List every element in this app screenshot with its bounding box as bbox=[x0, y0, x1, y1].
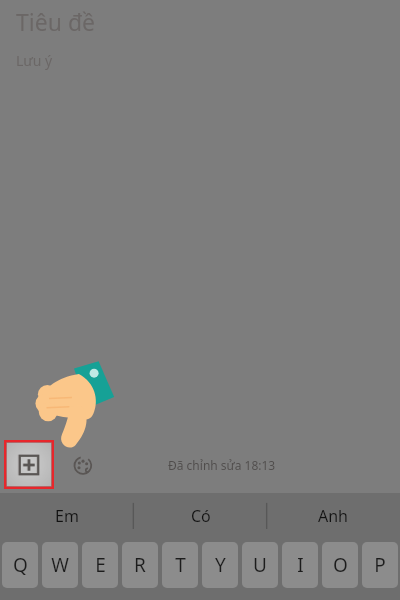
button[interactable]: W bbox=[42, 542, 78, 588]
staticText: P bbox=[374, 552, 386, 578]
button[interactable]: Có bbox=[134, 493, 267, 538]
staticText: Q bbox=[13, 552, 28, 578]
staticText: W bbox=[51, 552, 69, 578]
staticText: Em bbox=[55, 505, 79, 527]
staticText: Lưu ý bbox=[16, 51, 53, 70]
staticText: E bbox=[95, 552, 106, 578]
button[interactable]: R bbox=[122, 542, 158, 588]
button[interactable]: Tiêu đề bbox=[0, 4, 400, 38]
staticText: O bbox=[333, 552, 348, 578]
staticText: U bbox=[253, 552, 267, 578]
staticText: Anh bbox=[318, 505, 349, 527]
staticText: Đã chỉnh sửa 18:13 bbox=[168, 457, 276, 473]
button[interactable]: Anh bbox=[267, 493, 400, 538]
button[interactable]: U bbox=[242, 542, 278, 588]
staticText: Y bbox=[215, 552, 226, 578]
button[interactable]: O bbox=[322, 542, 358, 588]
button[interactable]: I bbox=[282, 542, 318, 588]
staticText: T bbox=[175, 552, 186, 578]
staticText: R bbox=[134, 552, 146, 578]
button[interactable]: Em bbox=[0, 493, 134, 538]
button[interactable]: Color palette bbox=[66, 448, 100, 482]
button[interactable]: E bbox=[82, 542, 118, 588]
staticText: I bbox=[297, 552, 304, 578]
staticText: Tiêu đề bbox=[16, 6, 96, 37]
button[interactable]: Q bbox=[2, 542, 38, 588]
button[interactable]: Insert bbox=[11, 448, 45, 482]
staticText: Có bbox=[191, 505, 211, 527]
button[interactable]: Y bbox=[202, 542, 238, 588]
button[interactable]: T bbox=[162, 542, 198, 588]
button[interactable]: P bbox=[362, 542, 398, 588]
